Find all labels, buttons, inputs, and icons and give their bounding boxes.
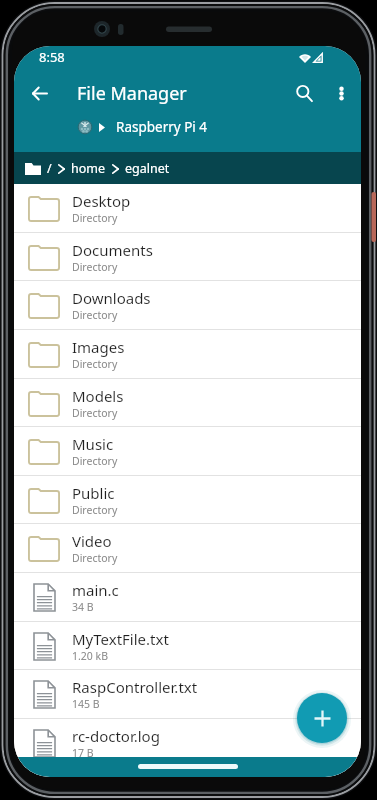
staticText: File Manager: [77, 81, 187, 106]
button[interactable]: RaspController.txt: [14, 670, 361, 719]
button[interactable]: egalnet: [125, 160, 170, 177]
button[interactable]: Desktop: [14, 184, 361, 233]
staticText: RaspController.txt: [72, 677, 198, 697]
staticText: Directory: [72, 357, 118, 371]
staticText: Directory: [72, 211, 118, 225]
staticText: rc-doctor.log: [72, 726, 160, 746]
staticText: Directory: [72, 503, 118, 517]
button[interactable]: Models: [14, 379, 361, 428]
staticText: MyTextFile.txt: [72, 629, 169, 649]
button[interactable]: Search: [282, 71, 326, 115]
button[interactable]: Video: [14, 524, 361, 573]
button[interactable]: Raspberry Pi 4: [78, 118, 208, 136]
staticText: 145 B: [72, 697, 100, 711]
staticText: Desktop: [72, 191, 131, 211]
staticText: Directory: [72, 551, 118, 565]
staticText: Video: [72, 531, 112, 551]
button[interactable]: Documents: [14, 233, 361, 282]
staticText: Directory: [72, 260, 118, 274]
button[interactable]: More options: [321, 73, 361, 113]
button[interactable]: home: [71, 160, 106, 177]
staticText: Models: [72, 386, 124, 406]
staticText: 34 B: [72, 600, 94, 614]
button[interactable]: Music: [14, 427, 361, 476]
staticText: Downloads: [72, 288, 151, 308]
staticText: 1.20 kB: [72, 649, 108, 663]
staticText: main.c: [72, 580, 119, 600]
button[interactable]: Images: [14, 330, 361, 379]
staticText: Images: [72, 337, 125, 357]
staticText: Music: [72, 434, 114, 454]
button[interactable]: Back: [16, 69, 64, 117]
staticText: 8:58: [39, 48, 65, 66]
button[interactable]: rc-doctor.log: [14, 719, 361, 768]
staticText: Documents: [72, 240, 153, 260]
staticText: 17 B: [72, 746, 94, 760]
staticText: Directory: [72, 308, 118, 322]
button[interactable]: Add: [297, 693, 347, 743]
button[interactable]: Root folder: [25, 163, 41, 175]
button[interactable]: main.c: [14, 573, 361, 622]
staticText: Directory: [72, 406, 118, 420]
staticText: Directory: [72, 454, 118, 468]
staticText: Public: [72, 483, 115, 503]
button[interactable]: MyTextFile.txt: [14, 622, 361, 671]
button[interactable]: /: [47, 160, 52, 177]
button[interactable]: Downloads: [14, 281, 361, 330]
staticText: Raspberry Pi 4: [116, 118, 208, 136]
button[interactable]: Public: [14, 476, 361, 525]
